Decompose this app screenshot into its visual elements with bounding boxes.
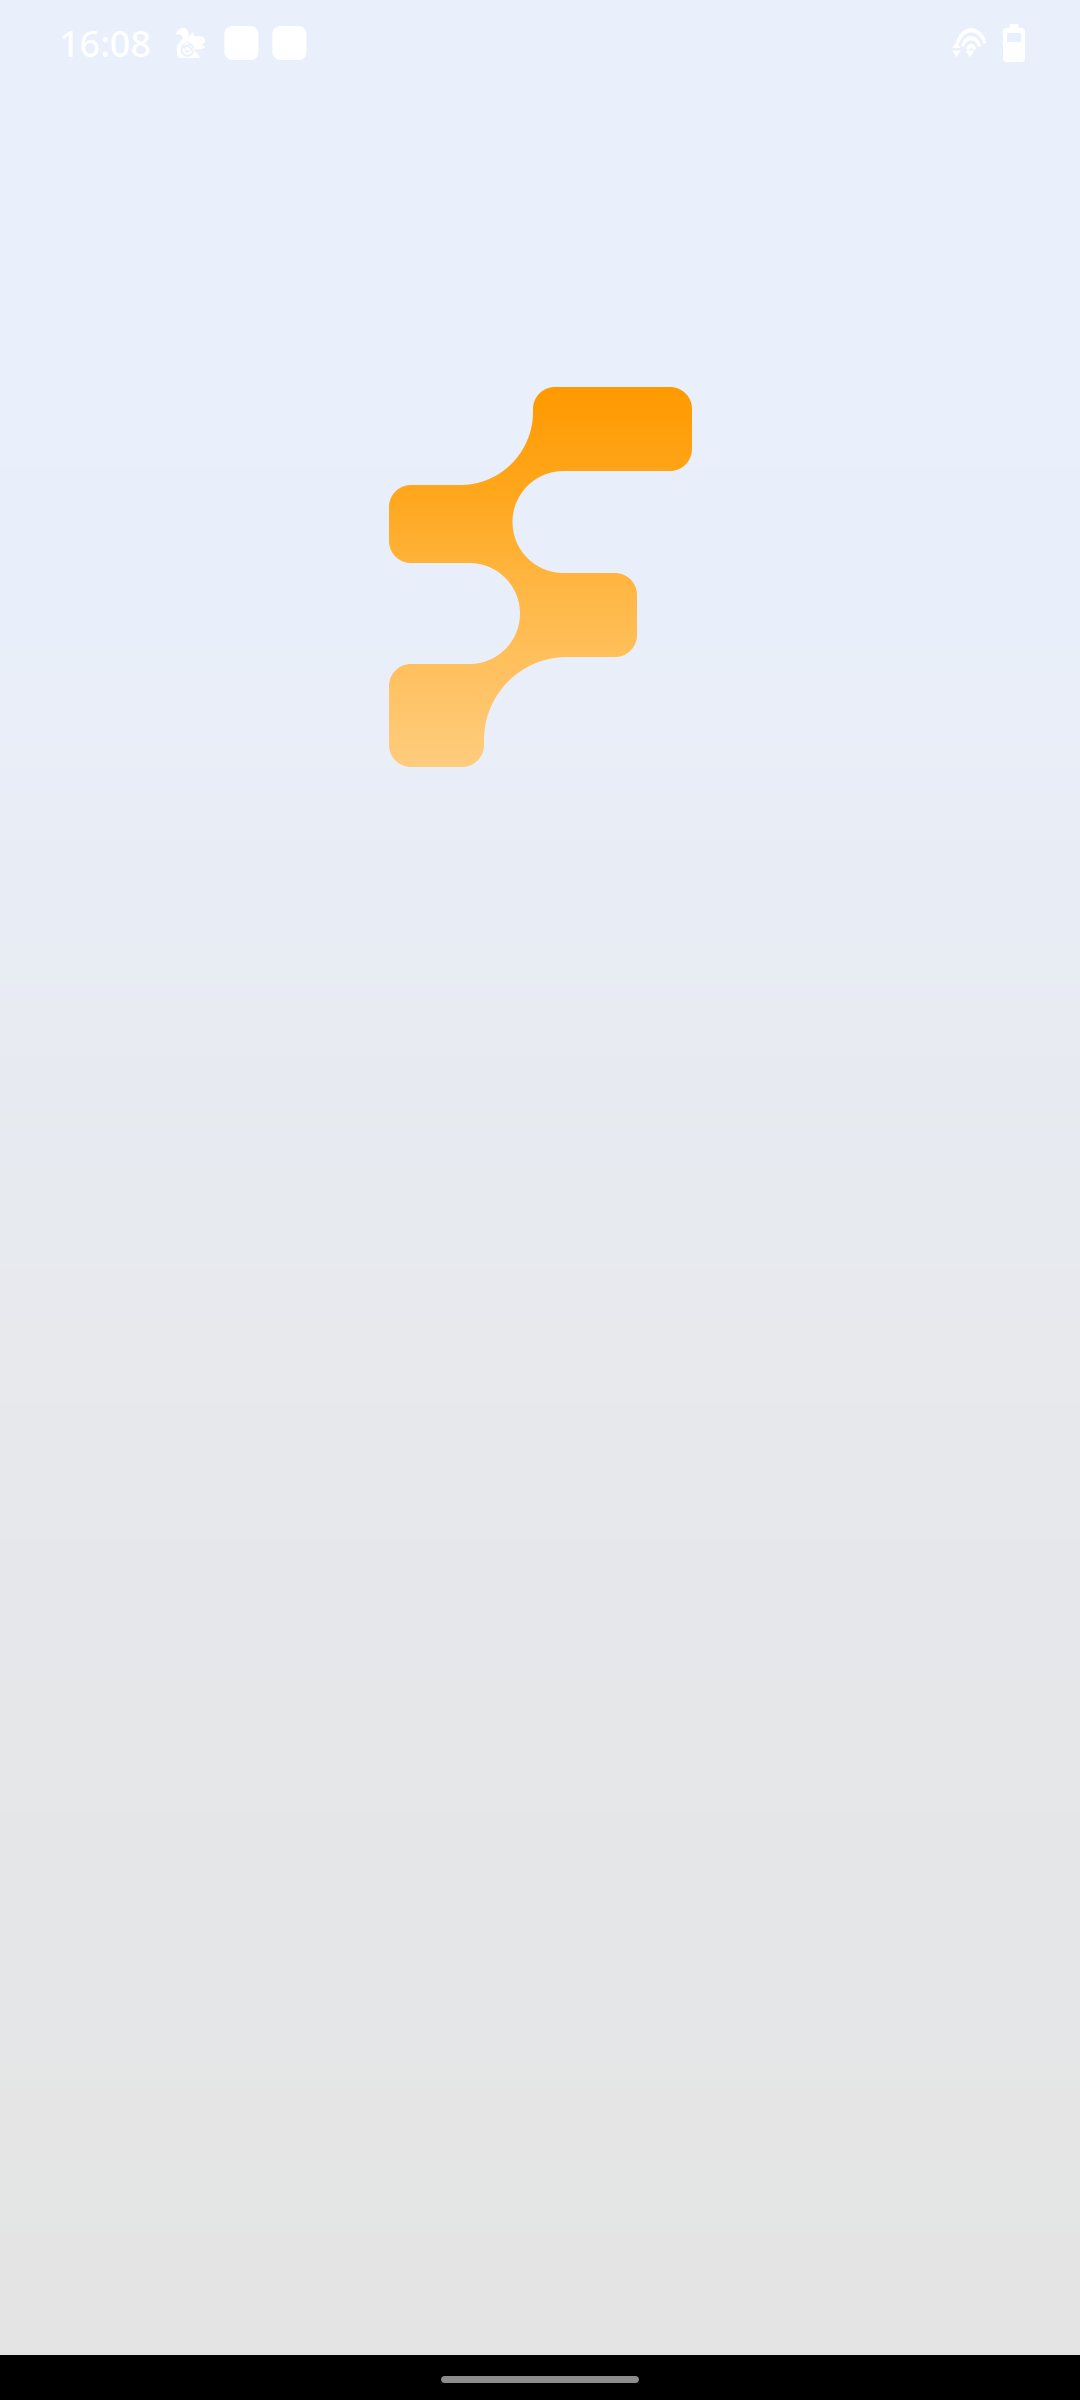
staticText: 16:08 bbox=[59, 19, 151, 67]
